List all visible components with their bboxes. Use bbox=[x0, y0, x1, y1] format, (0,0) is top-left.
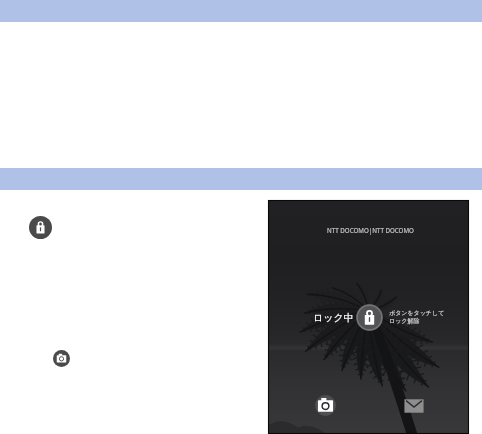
staticText: ボタンをタッチして bbox=[389, 309, 445, 317]
button[interactable]: Lock bbox=[29, 216, 52, 239]
staticText: ロック解除 bbox=[389, 317, 420, 325]
button[interactable]: Camera bbox=[53, 350, 70, 367]
staticText: ロック中 bbox=[313, 311, 354, 324]
button[interactable]: Messages bbox=[399, 391, 429, 421]
button[interactable]: Unlock bbox=[356, 304, 383, 331]
button[interactable]: Camera bbox=[312, 392, 339, 419]
staticText: NTT DOCOMO|NTT DOCOMO bbox=[327, 226, 414, 234]
